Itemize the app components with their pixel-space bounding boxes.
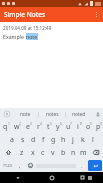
button[interactable]: t <box>43 120 53 133</box>
button[interactable]: notes <box>39 108 65 120</box>
staticText: e <box>26 122 30 132</box>
staticText: 2019.04.09 at 15:12:49 <box>3 25 52 31</box>
staticText: p <box>96 122 101 132</box>
staticText: 5 <box>50 122 52 126</box>
staticText: t <box>47 122 50 132</box>
staticText: noted <box>72 111 86 118</box>
staticText: g <box>51 135 56 145</box>
staticText: z <box>20 148 24 158</box>
button[interactable]: b <box>58 146 68 159</box>
button[interactable]: q <box>0 120 11 133</box>
button[interactable]: Enter <box>88 160 102 171</box>
staticText: note <box>26 33 38 40</box>
button[interactable]: h <box>58 133 68 146</box>
button[interactable]: r <box>33 120 43 133</box>
button[interactable]: , <box>15 159 25 172</box>
button[interactable]: note <box>13 108 38 120</box>
button[interactable]: ?123 <box>0 159 15 172</box>
staticText: b <box>61 148 66 158</box>
button[interactable]: x <box>27 146 38 159</box>
staticText: 9 <box>90 122 92 126</box>
button[interactable]: w <box>11 120 22 133</box>
staticText: , <box>19 162 21 170</box>
staticText: 0 <box>100 122 102 126</box>
staticText: notes <box>46 111 59 118</box>
staticText: f <box>42 135 45 145</box>
staticText: a <box>10 135 14 145</box>
staticText: i <box>77 122 79 132</box>
staticText: s <box>21 135 25 145</box>
staticText: ?123 <box>3 163 13 169</box>
staticText: w <box>14 122 20 132</box>
button[interactable]: l <box>88 133 98 146</box>
button[interactable]: Space <box>35 159 77 172</box>
staticText: note <box>20 111 31 118</box>
button[interactable]: p <box>93 120 103 133</box>
button[interactable]: Backspace <box>88 146 103 159</box>
staticText: u <box>66 122 71 132</box>
staticText: k <box>81 135 85 145</box>
button[interactable]: Back <box>0 172 35 183</box>
staticText: m <box>80 148 87 158</box>
staticText: 1 <box>8 122 10 126</box>
staticText: l <box>92 135 94 145</box>
button[interactable]: u <box>63 120 73 133</box>
button[interactable]: f <box>38 133 48 146</box>
button[interactable]: k <box>78 133 88 146</box>
button[interactable]: 2019.04.09 at 15:12:49 <box>0 22 103 108</box>
staticText: Simple Notes <box>4 10 46 19</box>
staticText: c <box>41 148 45 158</box>
button[interactable]: o <box>83 120 93 133</box>
button[interactable]: j <box>68 133 78 146</box>
button[interactable]: m <box>78 146 88 159</box>
staticText: v <box>51 148 55 158</box>
button[interactable]: i <box>73 120 83 133</box>
staticText: d <box>31 135 36 145</box>
button[interactable]: Shift <box>0 146 16 159</box>
button[interactable]: More options <box>89 7 103 22</box>
staticText: q <box>3 122 8 132</box>
button[interactable]: Emoji <box>25 159 35 172</box>
staticText: r <box>37 122 40 132</box>
button[interactable]: d <box>28 133 38 146</box>
staticText: j <box>72 135 74 145</box>
button[interactable]: Home <box>35 172 69 183</box>
staticText: x <box>31 148 35 158</box>
staticText: 3 <box>30 122 32 126</box>
staticText: o <box>86 122 91 132</box>
staticText: Example <box>3 33 26 40</box>
button[interactable]: z <box>16 146 27 159</box>
staticText: n <box>71 148 76 158</box>
button[interactable]: g <box>48 133 58 146</box>
button[interactable]: s <box>17 133 28 146</box>
staticText: 4 <box>40 122 42 126</box>
button[interactable]: v <box>48 146 58 159</box>
staticText: 8 <box>80 122 82 126</box>
button[interactable]: Recents <box>81 176 84 179</box>
button[interactable]: a <box>6 133 17 146</box>
staticText: 7 <box>70 122 72 126</box>
button[interactable]: c <box>38 146 48 159</box>
button[interactable]: n <box>68 146 78 159</box>
staticText: . <box>81 162 83 170</box>
button[interactable]: Simple Notes <box>0 10 46 19</box>
button[interactable]: y <box>53 120 63 133</box>
button[interactable]: Voice input <box>92 108 103 120</box>
staticText: 6 <box>60 122 62 126</box>
button[interactable]: Expand toolbar <box>0 108 13 120</box>
button[interactable]: noted <box>66 108 92 120</box>
button[interactable]: e <box>22 120 33 133</box>
staticText: h <box>61 135 66 145</box>
button[interactable]: . <box>77 159 87 172</box>
staticText: y <box>56 122 60 132</box>
staticText: 2 <box>19 122 21 126</box>
